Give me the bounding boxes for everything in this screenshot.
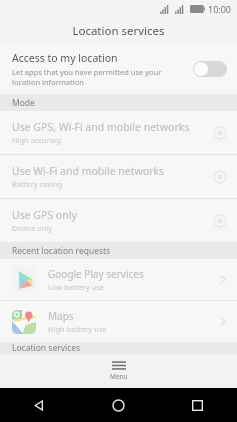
staticText: Use GPS, Wi-Fi and mobile networks <box>12 120 190 134</box>
staticText: Location services <box>12 342 81 354</box>
staticText: Maps <box>48 309 74 323</box>
staticText: Google Play services <box>48 267 144 281</box>
staticText: Let apps that you have permitted use you… <box>12 67 187 87</box>
staticText: 10:00 <box>208 3 232 15</box>
staticText: High accuracy <box>12 135 62 145</box>
staticText: Mode <box>12 97 35 109</box>
staticText: Battery saving <box>12 179 63 189</box>
button[interactable]: Access to my location toggle <box>193 61 227 77</box>
button[interactable]: Home <box>79 388 158 422</box>
button[interactable]: Back <box>0 388 79 422</box>
button[interactable]: Maps <box>0 301 237 342</box>
staticText: Access to my location <box>12 51 118 65</box>
button[interactable]: Recent apps <box>158 388 237 422</box>
button[interactable]: Use GPS, Wi-Fi and mobile networks <box>0 111 237 154</box>
staticText: Device only <box>12 223 53 233</box>
staticText: High battery use <box>48 324 107 334</box>
button[interactable]: Use GPS only <box>0 199 237 242</box>
staticText: Use Wi-Fi and mobile networks <box>12 164 165 178</box>
staticText: Menu <box>110 372 128 381</box>
button[interactable]: Access to my location <box>0 44 237 94</box>
button[interactable]: Use Wi-Fi and mobile networks <box>0 155 237 198</box>
button[interactable]: Google Play services <box>0 259 237 300</box>
staticText: Use GPS only <box>12 208 77 222</box>
staticText: Low battery use <box>48 282 104 292</box>
button[interactable]: Menu <box>96 358 142 384</box>
staticText: Location services <box>72 23 165 39</box>
staticText: Recent location requests <box>12 245 111 257</box>
